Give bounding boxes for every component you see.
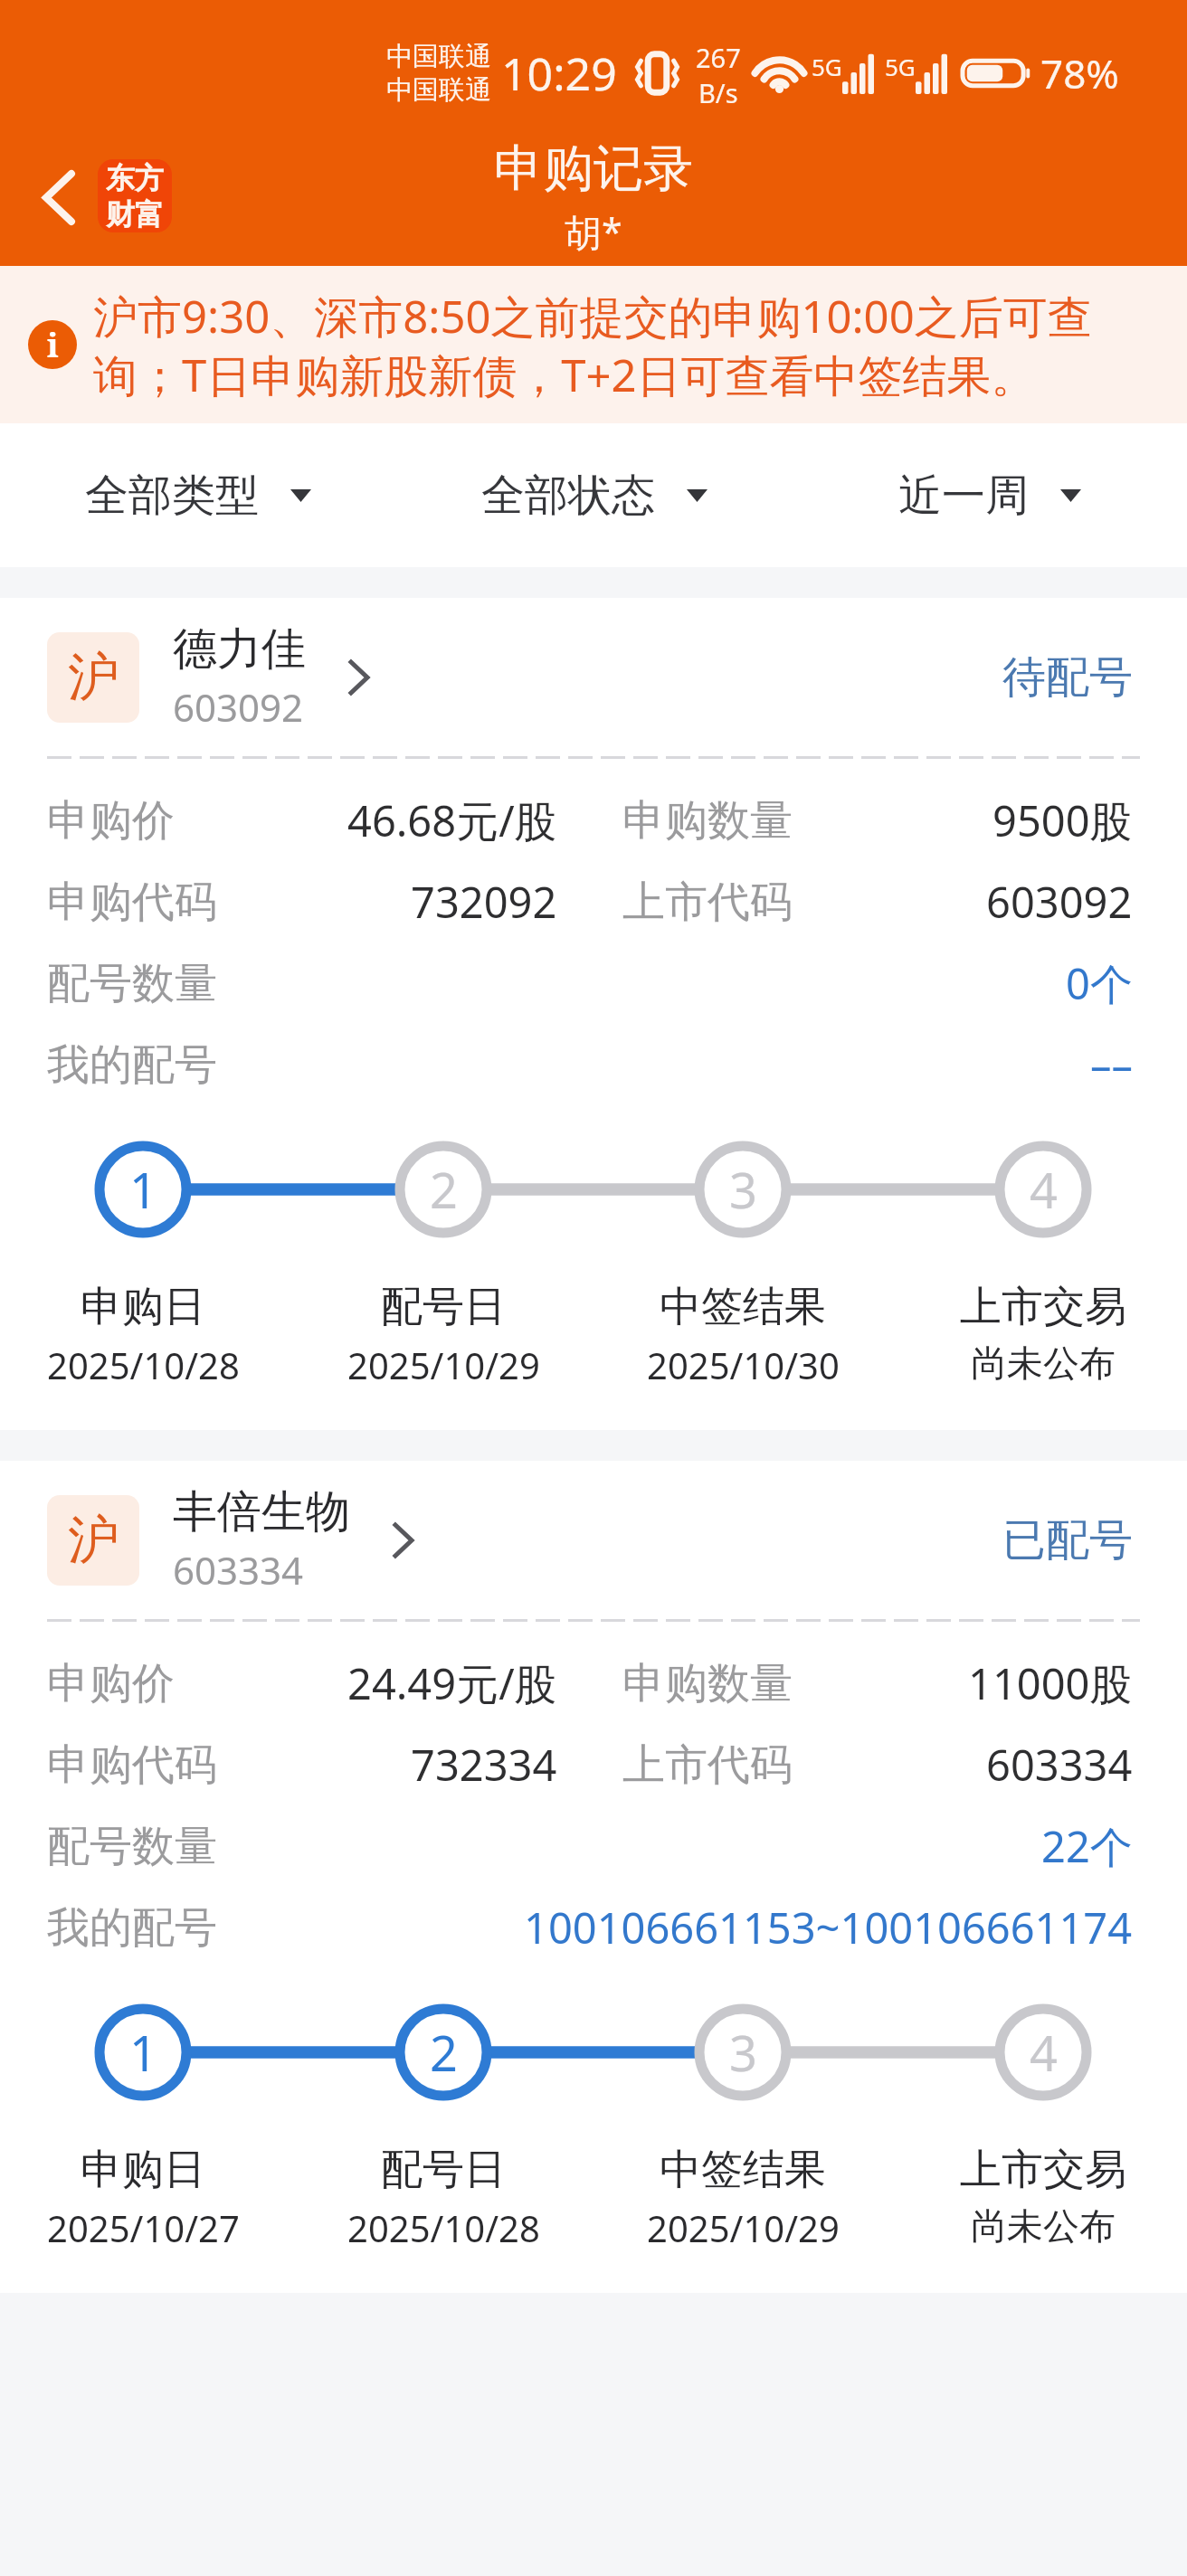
staticText: 东方 [106, 160, 164, 196]
staticText: 申购价 [47, 794, 175, 848]
staticText: 10:29 [501, 43, 617, 104]
staticText: 申购代码 [47, 876, 217, 929]
staticText: 4 [1030, 2019, 1058, 2086]
staticText: 732092 [411, 873, 557, 931]
staticText: 78% [1040, 46, 1119, 100]
staticText: 5G [812, 51, 842, 82]
button[interactable]: 近一周 [792, 469, 1187, 523]
staticText: 中国联通 [386, 40, 491, 73]
staticText: 近一周 [898, 469, 1029, 523]
staticText: 待配号 [1002, 650, 1133, 705]
staticText: 上市交易 [960, 2144, 1126, 2196]
staticText: 申购数量 [622, 794, 793, 848]
button[interactable]: 沪 [0, 598, 1187, 756]
staticText: 22个 [1041, 1817, 1133, 1875]
staticText: 100106661153~100106661174 [524, 1899, 1133, 1956]
staticText: 申购代码 [47, 1738, 217, 1792]
staticText: 1 [129, 1156, 157, 1223]
staticText: 申购日 [81, 2144, 205, 2196]
staticText: 配号数量 [47, 957, 217, 1010]
staticText: 603334 [986, 1736, 1133, 1794]
staticText: 1 [129, 2019, 157, 2086]
staticText: i [47, 323, 59, 367]
button[interactable]: 全部状态 [396, 469, 792, 523]
staticText: 申购记录 [494, 137, 693, 200]
staticText: 申购数量 [622, 1657, 793, 1710]
staticText: 5G [885, 51, 916, 82]
staticText: 尚未公布 [971, 2203, 1116, 2249]
staticText: 24.49元/股 [347, 1654, 557, 1712]
staticText: 603092 [173, 681, 304, 733]
staticText: B/s [698, 75, 738, 107]
staticText: 我的配号 [47, 1038, 217, 1092]
staticText: 2 [430, 2019, 458, 2086]
staticText: 732334 [411, 1736, 557, 1794]
staticText: 沪 [68, 1508, 119, 1573]
staticText: 丰倍生物 [173, 1484, 350, 1540]
staticText: 2025/10/29 [647, 2203, 840, 2252]
staticText: 全部类型 [85, 469, 259, 523]
staticText: 2025/10/28 [47, 1340, 240, 1389]
button[interactable]: 全部类型 [0, 469, 396, 523]
staticText: 配号日 [381, 2144, 506, 2196]
button[interactable]: Back [20, 152, 98, 242]
button[interactable]: 东方财富 [98, 159, 172, 232]
staticText: 2025/10/27 [47, 2203, 240, 2252]
button[interactable]: 沪 [0, 1461, 1187, 1619]
staticText: 3 [729, 2019, 757, 2086]
staticText: 0个 [1066, 954, 1133, 1012]
staticText: 财富 [106, 196, 164, 232]
staticText: 胡* [565, 206, 622, 257]
staticText: 2025/10/28 [347, 2203, 540, 2252]
staticText: 德力佳 [173, 621, 306, 677]
staticText: 4 [1030, 1156, 1058, 1223]
staticText: 沪市9:30、深市8:50之前提交的申购10:00之后可查 询；T日申购新股新债… [93, 286, 1092, 404]
staticText: 我的配号 [47, 1901, 217, 1955]
staticText: 沪 [68, 645, 119, 710]
staticText: 配号日 [381, 1281, 506, 1333]
staticText: 中签结果 [660, 1281, 826, 1333]
staticText: 上市代码 [622, 1738, 793, 1792]
staticText: 中国联通 [386, 73, 491, 107]
staticText: 申购日 [81, 1281, 205, 1333]
staticText: 配号数量 [47, 1820, 217, 1873]
staticText: 已配号 [1002, 1513, 1133, 1567]
staticText: 上市代码 [622, 876, 793, 929]
staticText: 9500股 [992, 791, 1133, 849]
staticText: 603092 [986, 873, 1133, 931]
staticText: 2025/10/29 [347, 1340, 540, 1389]
staticText: 603334 [173, 1544, 304, 1596]
staticText: –– [1090, 1036, 1133, 1094]
staticText: 46.68元/股 [347, 791, 557, 849]
staticText: 267 [696, 40, 741, 75]
staticText: 11000股 [968, 1654, 1133, 1712]
staticText: 2 [430, 1156, 458, 1223]
staticText: 申购价 [47, 1657, 175, 1710]
staticText: 2025/10/30 [647, 1340, 840, 1389]
staticText: 中签结果 [660, 2144, 826, 2196]
staticText: 全部状态 [481, 469, 655, 523]
staticText: 尚未公布 [971, 1340, 1116, 1386]
staticText: 3 [729, 1156, 757, 1223]
staticText: 上市交易 [960, 1281, 1126, 1333]
